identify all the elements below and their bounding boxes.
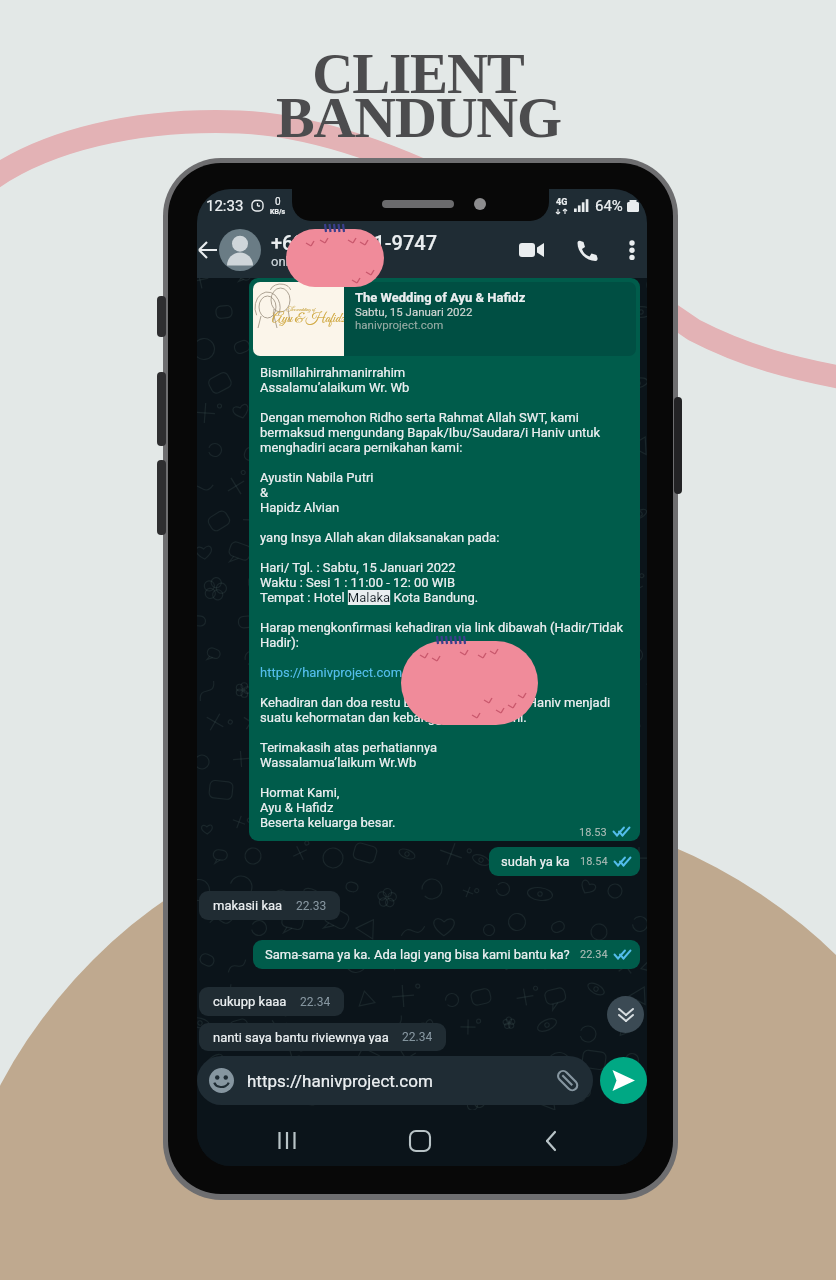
staticText: KB/s (270, 208, 286, 216)
staticText: 4G (556, 197, 568, 208)
button[interactable]: cukupp kaaa (199, 987, 344, 1016)
staticText: 18.54 (580, 855, 608, 868)
staticText: 22.34 (300, 995, 331, 1009)
staticText: The Wedding of Ayu & Hafidz (355, 290, 526, 305)
staticText: hanivproject.com (355, 318, 444, 331)
staticText: BANDUNG (276, 85, 561, 149)
staticText: nanti saya bantu riviewnya yaa (213, 1030, 389, 1044)
staticText: 64% (595, 197, 623, 215)
staticText: 12:33 (206, 197, 244, 215)
button[interactable]: Scroll to bottom (607, 996, 644, 1033)
button[interactable]: https://hanivproject.com (197, 1056, 593, 1105)
staticText: +62 852-981-9747 (271, 231, 438, 254)
button[interactable]: makasii kaa (199, 891, 340, 920)
button[interactable]: More options (622, 240, 642, 260)
button[interactable]: The wedding of (249, 278, 640, 841)
button[interactable]: Back (528, 1117, 576, 1165)
staticText: 22.34 (402, 1030, 433, 1044)
staticText: Ayu & Hafidz (272, 310, 344, 328)
button[interactable]: sudah ya ka (489, 847, 640, 876)
staticText: The wedding of (286, 306, 315, 314)
staticText: https://hanivproject.com (247, 1071, 433, 1091)
staticText: CLIENT (312, 42, 524, 105)
staticText: 18.53 (579, 826, 607, 837)
button[interactable]: Send (600, 1057, 647, 1104)
button[interactable]: Attach (555, 1068, 581, 1094)
button[interactable]: nanti saya bantu riviewnya yaa (199, 1023, 446, 1051)
staticText: Sama-sama ya ka. Ada lagi yang bisa kami… (265, 947, 570, 962)
staticText: sudah ya ka (501, 854, 570, 869)
button[interactable]: Video call (515, 233, 549, 267)
button[interactable]: Sama-sama ya ka. Ada lagi yang bisa kami… (253, 940, 640, 969)
staticText: cukupp kaaa (213, 994, 287, 1009)
button[interactable]: Recent apps (263, 1117, 311, 1165)
staticText: 0 (275, 196, 281, 208)
staticText: Sabtu, 15 Januari 2022 (355, 305, 473, 318)
staticText: 22.33 (296, 899, 327, 913)
staticText: online (271, 254, 306, 269)
staticText: 22.34 (580, 948, 608, 961)
staticText: Bismillahirrahmanirrahim Assalamu’alaiku… (260, 365, 624, 830)
staticText: makasii kaa (213, 898, 283, 913)
button[interactable]: Back (197, 235, 219, 265)
button[interactable]: Home (396, 1117, 444, 1165)
button[interactable]: Voice call (572, 235, 602, 265)
